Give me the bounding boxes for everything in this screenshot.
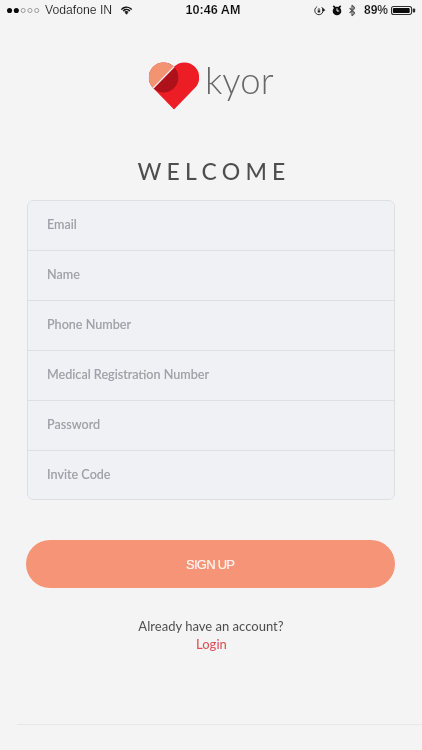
staticText: Medical Registration Number <box>47 367 210 382</box>
staticText: Invite Code <box>47 467 111 482</box>
button[interactable]: SIGN UP <box>26 540 395 588</box>
staticText: Name <box>47 267 80 282</box>
staticText: Vodafone IN <box>45 3 113 17</box>
button[interactable]: Medical Registration Number <box>27 351 395 400</box>
staticText: Email <box>47 217 77 232</box>
button[interactable]: Login <box>194 636 229 652</box>
button[interactable]: Password <box>27 401 395 450</box>
staticText: 89% <box>364 3 389 16</box>
staticText: Password <box>47 417 101 432</box>
staticText: 10:46 AM <box>2 3 422 17</box>
button[interactable]: Invite Code <box>27 451 395 500</box>
staticText: Login <box>196 636 227 652</box>
staticText: Already have an account? <box>0 618 422 634</box>
staticText: WELCOME <box>3 157 422 185</box>
staticText: kyor <box>205 58 274 102</box>
button[interactable]: Name <box>27 251 395 300</box>
button[interactable]: Email <box>27 200 395 250</box>
staticText: SIGN UP <box>186 557 235 572</box>
staticText: Phone Number <box>47 317 132 332</box>
button[interactable]: Phone Number <box>27 301 395 350</box>
